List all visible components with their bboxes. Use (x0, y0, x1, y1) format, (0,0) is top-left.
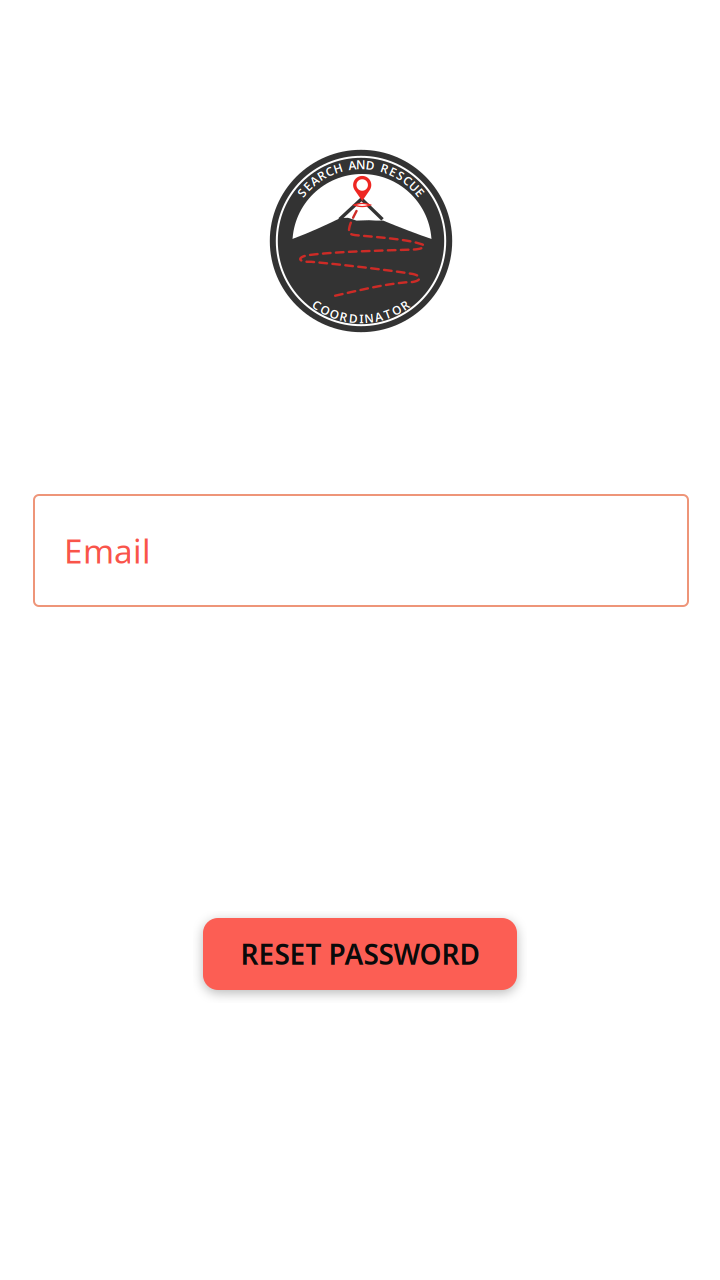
staticText: R (340, 309, 348, 325)
staticText: C (404, 173, 412, 188)
staticText: O (392, 302, 401, 318)
staticText (376, 158, 379, 174)
staticText: S (298, 185, 305, 200)
staticText: A (375, 309, 383, 324)
staticText: U (410, 178, 419, 194)
staticText: N (356, 157, 366, 172)
staticText: R (318, 168, 326, 183)
staticText: E (417, 185, 424, 200)
staticText: H (333, 160, 342, 176)
staticText: RESET PASSWORD (240, 935, 479, 973)
staticText: D (366, 157, 375, 173)
staticText: R (381, 160, 389, 176)
staticText: S (397, 168, 404, 184)
staticText: C (313, 297, 321, 313)
staticText: T (384, 306, 391, 322)
staticText: Email (64, 528, 151, 573)
staticText: C (325, 163, 333, 179)
staticText: R (401, 297, 409, 313)
staticText: E (389, 164, 396, 180)
staticText: I (359, 311, 363, 326)
staticText: O (321, 302, 330, 318)
staticText (343, 158, 346, 174)
staticText: E (304, 178, 311, 194)
staticText: N (364, 310, 374, 326)
staticText: D (349, 310, 358, 326)
staticText: O (330, 306, 339, 322)
staticText: A (348, 157, 356, 173)
button[interactable]: RESET PASSWORD (203, 918, 517, 990)
staticText: A (310, 173, 318, 188)
